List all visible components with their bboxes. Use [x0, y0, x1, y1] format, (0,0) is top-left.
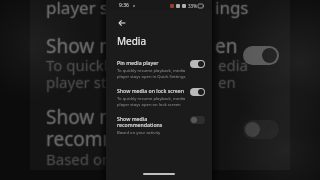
- staticText: player stays: [46, 0, 141, 20]
- staticText: recomme: [46, 126, 132, 152]
- staticText: en: [218, 71, 236, 91]
- staticText: Pin media player: [117, 59, 159, 66]
- staticText: Show me: [47, 33, 129, 59]
- staticText: Show me: [46, 104, 128, 130]
- button[interactable]: Pin media player: [106, 59, 212, 79]
- staticText: edia: [219, 55, 249, 75]
- staticText: Based on yo: [46, 148, 132, 168]
- staticText: Based on yo: [45, 149, 131, 169]
- button[interactable]: Switch off: [190, 116, 205, 124]
- staticText: player stays: [46, 73, 130, 93]
- button[interactable]: Switch on: [190, 88, 205, 96]
- staticText: player stays: [46, 71, 130, 91]
- staticText: Show me: [45, 33, 127, 59]
- staticText: Based on yo: [47, 149, 133, 169]
- staticText: To quickly re: [46, 55, 134, 75]
- staticText: ings: [214, 0, 248, 19]
- staticText: Based on yo: [46, 150, 132, 170]
- staticText: en: [218, 73, 236, 93]
- staticText: Show me: [46, 103, 128, 129]
- staticText: Show me: [47, 104, 129, 130]
- staticText: Show me: [46, 33, 128, 59]
- staticText: To quickly re: [47, 55, 135, 75]
- staticText: Media: [117, 34, 147, 48]
- staticText: To quickly re: [45, 55, 133, 75]
- staticText: To quickly resume playback, media player…: [117, 96, 186, 107]
- staticText: en: [214, 33, 237, 59]
- button[interactable]: Toggle on: [243, 46, 279, 65]
- staticText: player stays: [45, 0, 140, 19]
- staticText: To quickly re: [46, 56, 134, 76]
- staticText: en: [215, 33, 238, 59]
- button[interactable]: Back: [115, 16, 128, 29]
- staticText: en: [218, 72, 236, 92]
- staticText: player stays: [46, 0, 141, 19]
- staticText: en: [216, 33, 239, 59]
- button[interactable]: Toggle off: [243, 120, 279, 139]
- staticText: edia: [217, 55, 247, 75]
- staticText: ings: [216, 0, 250, 19]
- staticText: Based on yo: [46, 149, 132, 169]
- staticText: Show media recommendations: [117, 115, 163, 128]
- staticText: ings: [215, 0, 249, 19]
- staticText: Show me: [45, 104, 127, 130]
- staticText: recomme: [46, 127, 132, 153]
- staticText: ings: [215, 0, 249, 18]
- staticText: recomme: [46, 125, 132, 151]
- button[interactable]: Show media recommendations: [106, 115, 212, 136]
- staticText: edia: [218, 55, 248, 75]
- staticText: ings: [215, 0, 249, 20]
- button[interactable]: Switch on: [190, 60, 205, 68]
- staticText: player stays: [47, 72, 131, 92]
- staticText: player stays: [45, 72, 129, 92]
- staticText: 9:36: [119, 2, 129, 9]
- staticText: player stays: [46, 72, 130, 92]
- staticText: en: [215, 34, 238, 60]
- staticText: Show media on lock screen: [117, 87, 185, 94]
- staticText: recomme: [45, 126, 131, 152]
- staticText: edia: [218, 54, 248, 74]
- staticText: To quickly resume playback, media player…: [117, 68, 186, 79]
- staticText: Show me: [46, 105, 128, 131]
- staticText: player stays: [46, 0, 141, 18]
- staticText: Based on your activity: [117, 130, 161, 136]
- staticText: player stays: [47, 0, 142, 19]
- staticText: recomme: [47, 126, 133, 152]
- staticText: en: [219, 72, 237, 92]
- staticText: 33%: [188, 3, 197, 9]
- staticText: To quickly re: [46, 54, 134, 74]
- staticText: Show me: [46, 34, 128, 60]
- staticText: en: [215, 32, 238, 58]
- staticText: Show me: [46, 32, 128, 58]
- staticText: edia: [218, 56, 248, 76]
- button[interactable]: Show media on lock screen: [106, 87, 212, 107]
- staticText: en: [217, 72, 235, 92]
